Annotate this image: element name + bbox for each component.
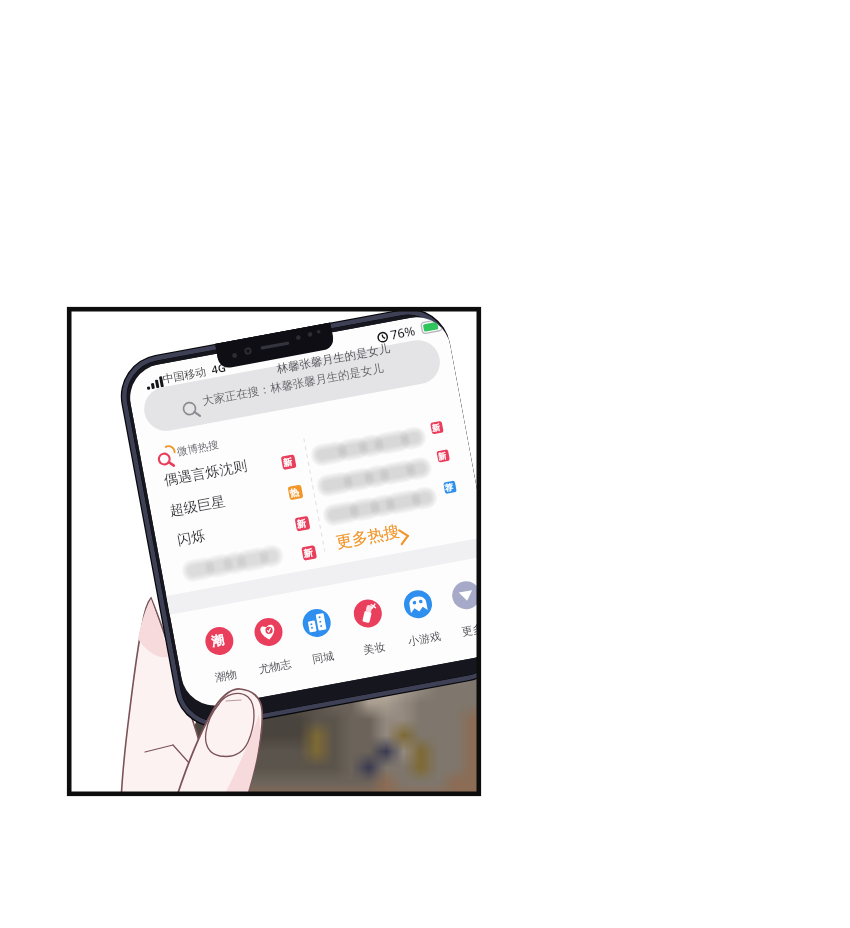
button[interactable]: Comic panel: hand holding phone showing … xyxy=(0,0,850,928)
